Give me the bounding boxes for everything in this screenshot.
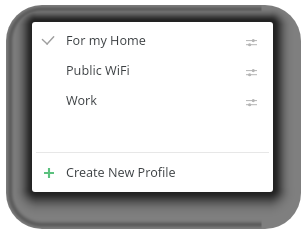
button[interactable]: Create New Profile [32, 153, 273, 192]
staticText: For my Home [66, 32, 146, 49]
staticText: Work [66, 92, 98, 109]
button[interactable]: Profile settings [236, 85, 266, 115]
staticText: Create New Profile [66, 164, 176, 181]
button[interactable]: For my Home [32, 25, 273, 55]
button[interactable]: Profile settings [236, 25, 266, 55]
button[interactable]: Profile settings [236, 55, 266, 85]
staticText: Public WiFi [66, 62, 130, 79]
button[interactable]: Public WiFi [32, 55, 273, 85]
button[interactable]: Work [32, 85, 273, 115]
